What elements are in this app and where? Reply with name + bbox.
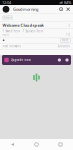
- button[interactable]: Filters: [2, 16, 12, 20]
- staticText: Time Remains: [2, 44, 20, 48]
- staticText: Filters: [3, 16, 11, 19]
- button[interactable]: Settings: [59, 7, 63, 11]
- staticText: 1 Saved Item 7 Spoken Item: [2, 29, 42, 33]
- staticText: Welcome Cloudspeak: [2, 23, 43, 28]
- button[interactable]: Upgrade now: [2, 55, 71, 65]
- button[interactable]: more: [60, 38, 70, 42]
- button[interactable]: More options: [68, 23, 71, 27]
- button[interactable]: Subscribe: [58, 44, 71, 48]
- staticText: 1/4: [66, 33, 71, 36]
- button[interactable]: Home: [24, 139, 48, 150]
- staticText: more: [2, 33, 9, 36]
- staticText: Subscribe: [58, 44, 71, 48]
- staticText: 12:04: [2, 0, 11, 5]
- staticText: more: [62, 38, 69, 42]
- staticText: 84%: [64, 0, 71, 5]
- staticText: Upgrade now: [11, 58, 31, 62]
- button[interactable]: Close: [63, 7, 70, 11]
- button[interactable]: Back: [0, 139, 24, 150]
- staticText: Good morning: [13, 7, 38, 12]
- button[interactable]: Recent apps: [48, 139, 72, 150]
